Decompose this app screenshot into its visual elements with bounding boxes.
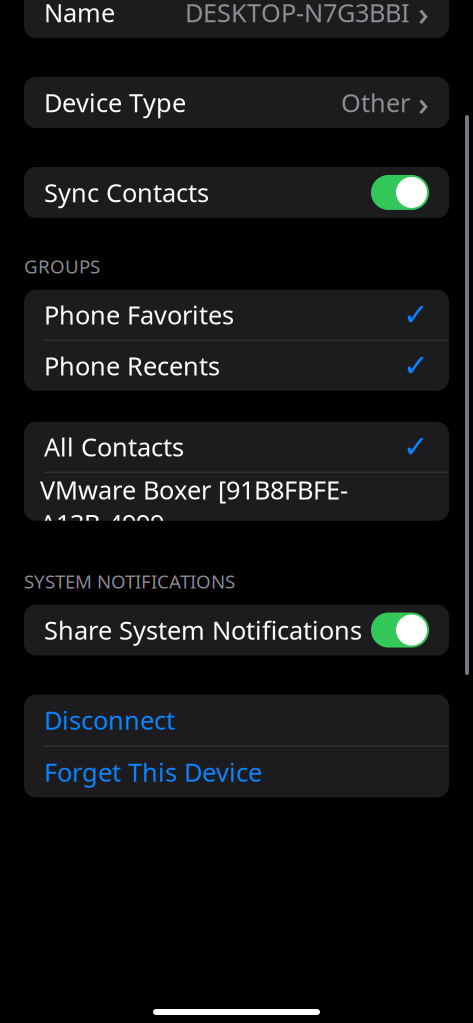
staticText: › xyxy=(418,0,429,35)
button[interactable]: Phone Favorites xyxy=(24,290,449,340)
staticText: Name xyxy=(44,0,115,29)
button[interactable]: Sync Contacts xyxy=(24,167,449,218)
staticText: Share System Notifications xyxy=(44,613,362,647)
staticText: Phone Recents xyxy=(44,349,220,382)
staticText: Disconnect xyxy=(44,703,175,737)
staticText xyxy=(233,1004,239,1023)
staticText: DESKTOP-N7G3BBI xyxy=(185,0,410,29)
staticText xyxy=(233,269,239,299)
staticText xyxy=(468,496,473,526)
staticText: › xyxy=(418,80,429,125)
staticText: ✓ xyxy=(403,348,429,383)
staticText: ✓ xyxy=(403,297,429,332)
staticText: VMware Boxer [91B8FBFE-A13B-4999-A1D5-4B… xyxy=(40,473,418,607)
button[interactable]: Name xyxy=(24,0,449,38)
staticText: Other xyxy=(341,86,410,119)
staticText: SYSTEM NOTIFICATIONS xyxy=(24,569,235,594)
staticText xyxy=(233,584,239,614)
staticText: Forget This Device xyxy=(44,755,262,789)
staticText: Phone Favorites xyxy=(44,298,234,331)
button[interactable]: Device Type xyxy=(24,77,449,128)
staticText: Device Type xyxy=(44,86,186,119)
button[interactable]: Forget This Device xyxy=(24,746,449,797)
staticText: Sync Contacts xyxy=(44,176,209,209)
staticText: ✓ xyxy=(403,429,429,464)
staticText: GROUPS xyxy=(24,254,100,279)
staticText: All Contacts xyxy=(44,430,184,463)
button[interactable]: All Contacts xyxy=(24,422,449,472)
button[interactable]: Disconnect xyxy=(24,694,449,745)
button[interactable]: Share System Notifications xyxy=(24,604,449,655)
button[interactable]: Phone Recents xyxy=(24,341,449,391)
